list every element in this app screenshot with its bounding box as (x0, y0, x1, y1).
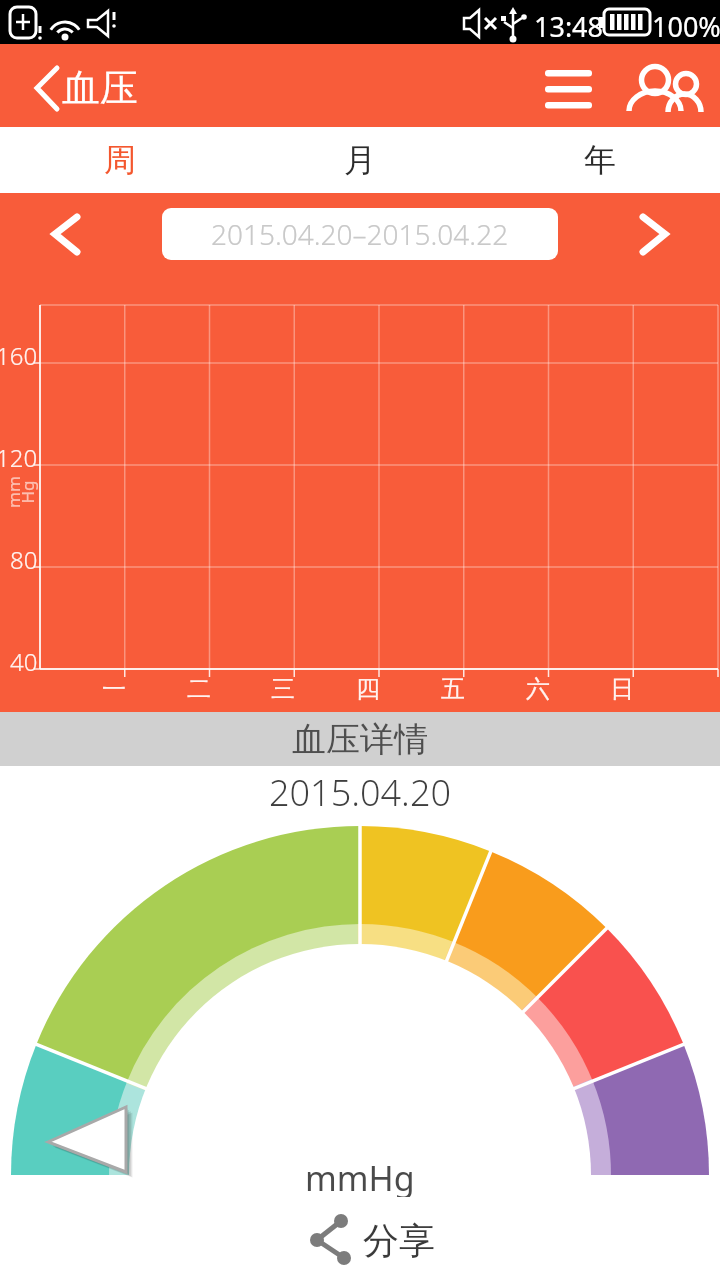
button[interactable] (616, 54, 712, 118)
staticText: 五 (441, 674, 465, 702)
staticText: 分享 (363, 1218, 435, 1263)
staticText: 血压详情 (292, 718, 428, 761)
staticText: 2015.04.20–2015.04.22 (211, 215, 509, 253)
staticText: 周 (104, 140, 136, 180)
button[interactable] (530, 54, 606, 118)
staticText: 三 (271, 674, 295, 702)
staticText: 40 (10, 645, 38, 675)
staticText: mm Hg (2, 476, 39, 508)
staticText: 血压 (62, 64, 138, 112)
staticText: 二 (187, 674, 211, 702)
button[interactable]: 2015.04.20–2015.04.22 (162, 208, 558, 260)
staticText: 年 (584, 140, 616, 180)
staticText: 日 (610, 674, 634, 702)
button[interactable] (30, 205, 95, 270)
button[interactable]: 血压 (20, 44, 160, 127)
staticText: 100% (652, 8, 720, 45)
button[interactable]: 分享 (295, 1205, 445, 1275)
staticText: 120 (0, 441, 38, 471)
staticText: 六 (526, 674, 550, 702)
button[interactable]: 月 (240, 127, 480, 193)
staticText: mmHg (305, 1155, 415, 1197)
staticText: 2015.04.20 (269, 768, 452, 814)
button[interactable]: 周 (0, 127, 240, 193)
staticText: 13:48 (534, 8, 604, 45)
button[interactable]: 年 (480, 127, 720, 193)
staticText: 80 (10, 543, 38, 573)
button[interactable] (625, 205, 690, 270)
staticText: 160 (0, 339, 38, 369)
staticText: 月 (344, 140, 376, 180)
staticText: 一 (102, 674, 126, 702)
staticText: 四 (356, 674, 380, 702)
